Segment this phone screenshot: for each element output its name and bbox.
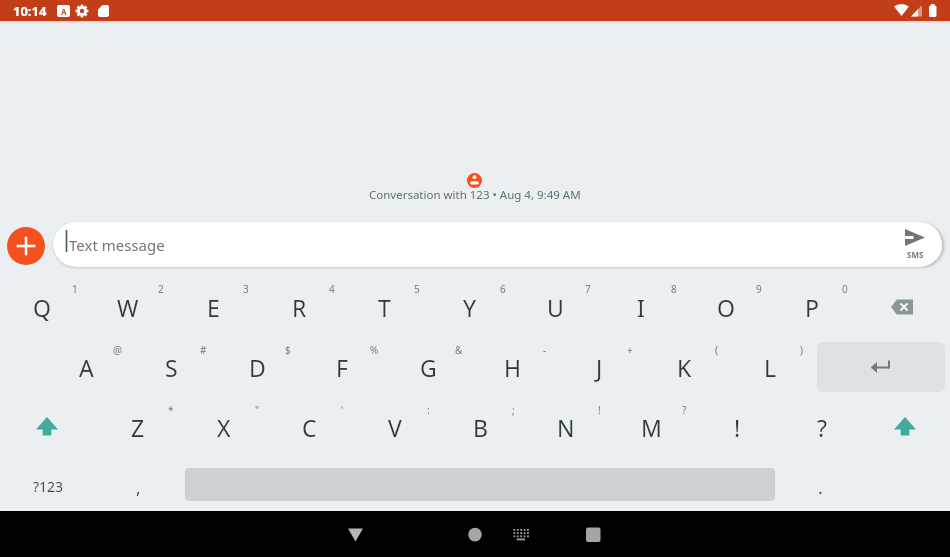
staticText: + — [627, 343, 633, 357]
staticText: 6 — [500, 282, 506, 296]
staticText: ? — [682, 403, 687, 417]
staticText: Q — [33, 292, 51, 323]
staticText: K — [677, 352, 692, 383]
staticText: ) — [800, 343, 803, 357]
staticText: S — [165, 352, 178, 383]
button[interactable] — [7, 227, 45, 265]
staticText: W — [117, 292, 139, 323]
staticText: T — [378, 292, 391, 323]
staticText: , — [136, 476, 141, 499]
staticText: J — [596, 352, 603, 383]
staticText: N — [557, 412, 575, 443]
staticText: I — [637, 292, 645, 323]
staticText: R — [292, 292, 307, 323]
staticText: ( — [715, 343, 718, 357]
staticText: 3 — [243, 282, 249, 296]
staticText: 1 — [72, 282, 78, 296]
staticText: ; — [512, 403, 515, 417]
staticText: - — [543, 343, 547, 357]
staticText: * — [168, 403, 174, 417]
staticText: U — [547, 292, 564, 323]
staticText: F — [336, 352, 348, 383]
staticText: ? — [817, 412, 827, 443]
staticText: 2 — [158, 282, 164, 296]
staticText: Text message — [69, 235, 165, 255]
staticText: 8 — [671, 282, 677, 296]
staticText: . — [818, 476, 823, 499]
staticText: M — [641, 412, 662, 443]
staticText: X — [217, 412, 231, 443]
staticText: P — [805, 292, 819, 323]
staticText: 10:14 — [13, 2, 47, 20]
staticText: C — [302, 412, 317, 443]
staticText: L — [764, 352, 777, 383]
staticText: # — [200, 343, 207, 357]
staticText: " — [255, 403, 260, 417]
staticText: V — [388, 412, 402, 443]
button[interactable] — [817, 342, 945, 392]
staticText: 9 — [756, 282, 762, 296]
staticText: H — [504, 352, 522, 383]
staticText: : — [427, 403, 430, 417]
staticText: ! — [734, 412, 741, 443]
staticText: @ — [113, 343, 122, 357]
staticText: Y — [463, 292, 477, 323]
staticText: % — [370, 343, 379, 357]
staticText: Conversation with 123 • Aug 4, 9:49 AM — [369, 187, 581, 203]
staticText: SMS — [907, 249, 924, 260]
staticText: 4 — [329, 282, 335, 296]
staticText: ' — [341, 403, 344, 417]
staticText: & — [455, 343, 463, 357]
staticText: $ — [285, 343, 291, 357]
staticText: D — [249, 352, 266, 383]
staticText: A — [79, 352, 94, 383]
staticText: G — [420, 352, 437, 383]
staticText: B — [473, 412, 488, 443]
button[interactable]: Text message — [53, 222, 942, 267]
staticText: 5 — [414, 282, 420, 296]
staticText: 7 — [585, 282, 591, 296]
staticText: O — [717, 292, 735, 323]
staticText: Z — [131, 412, 145, 443]
staticText: 0 — [842, 282, 848, 296]
staticText: ?123 — [33, 477, 64, 496]
staticText: A — [61, 6, 67, 17]
staticText: E — [207, 292, 220, 323]
staticText: ! — [598, 403, 601, 417]
